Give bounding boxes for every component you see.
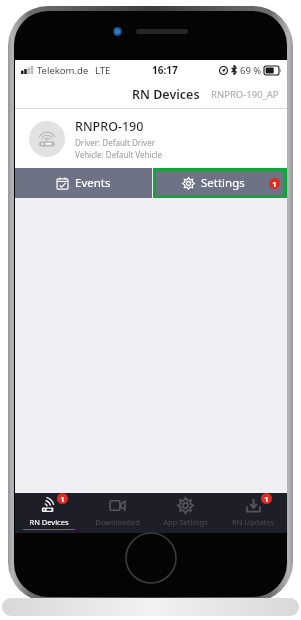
button[interactable]: Events (15, 168, 152, 198)
staticText: Vehicle: Default Vehicle (75, 149, 162, 160)
staticText: Events (75, 175, 111, 191)
staticText: 1 (264, 494, 269, 504)
button[interactable]: Settings (156, 171, 284, 195)
button[interactable]: Downloaded (83, 493, 151, 533)
staticText: App Settings (163, 517, 208, 527)
staticText: Settings (201, 175, 245, 191)
staticText: 69 % (240, 64, 262, 77)
staticText: RNPRO-190 (75, 118, 144, 135)
button[interactable]: RNPRO-190 (15, 109, 287, 168)
staticText: LTE (95, 64, 111, 77)
button[interactable]: App Settings (151, 493, 219, 533)
staticText: 16:17 (152, 63, 178, 77)
staticText: 1 (60, 494, 65, 504)
staticText: RNPRO-190_AP (211, 88, 279, 101)
staticText: 1 (272, 179, 277, 189)
staticText: RN Devices (132, 86, 200, 103)
button[interactable]: 1 (219, 493, 287, 533)
button[interactable]: 1 (15, 493, 83, 533)
staticText: RN Devices (29, 517, 69, 527)
staticText: Telekom.de (37, 64, 89, 77)
staticText: RN Updates (232, 517, 274, 527)
staticText: Driver: Default Driver (75, 137, 155, 148)
staticText: Downloaded (95, 517, 140, 527)
